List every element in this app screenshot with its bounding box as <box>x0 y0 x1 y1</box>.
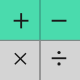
button[interactable]: Plus <box>0 0 40 40</box>
button[interactable]: Multiply <box>0 40 40 80</box>
button[interactable]: Divide <box>40 40 80 80</box>
button[interactable]: Minus <box>40 0 80 40</box>
